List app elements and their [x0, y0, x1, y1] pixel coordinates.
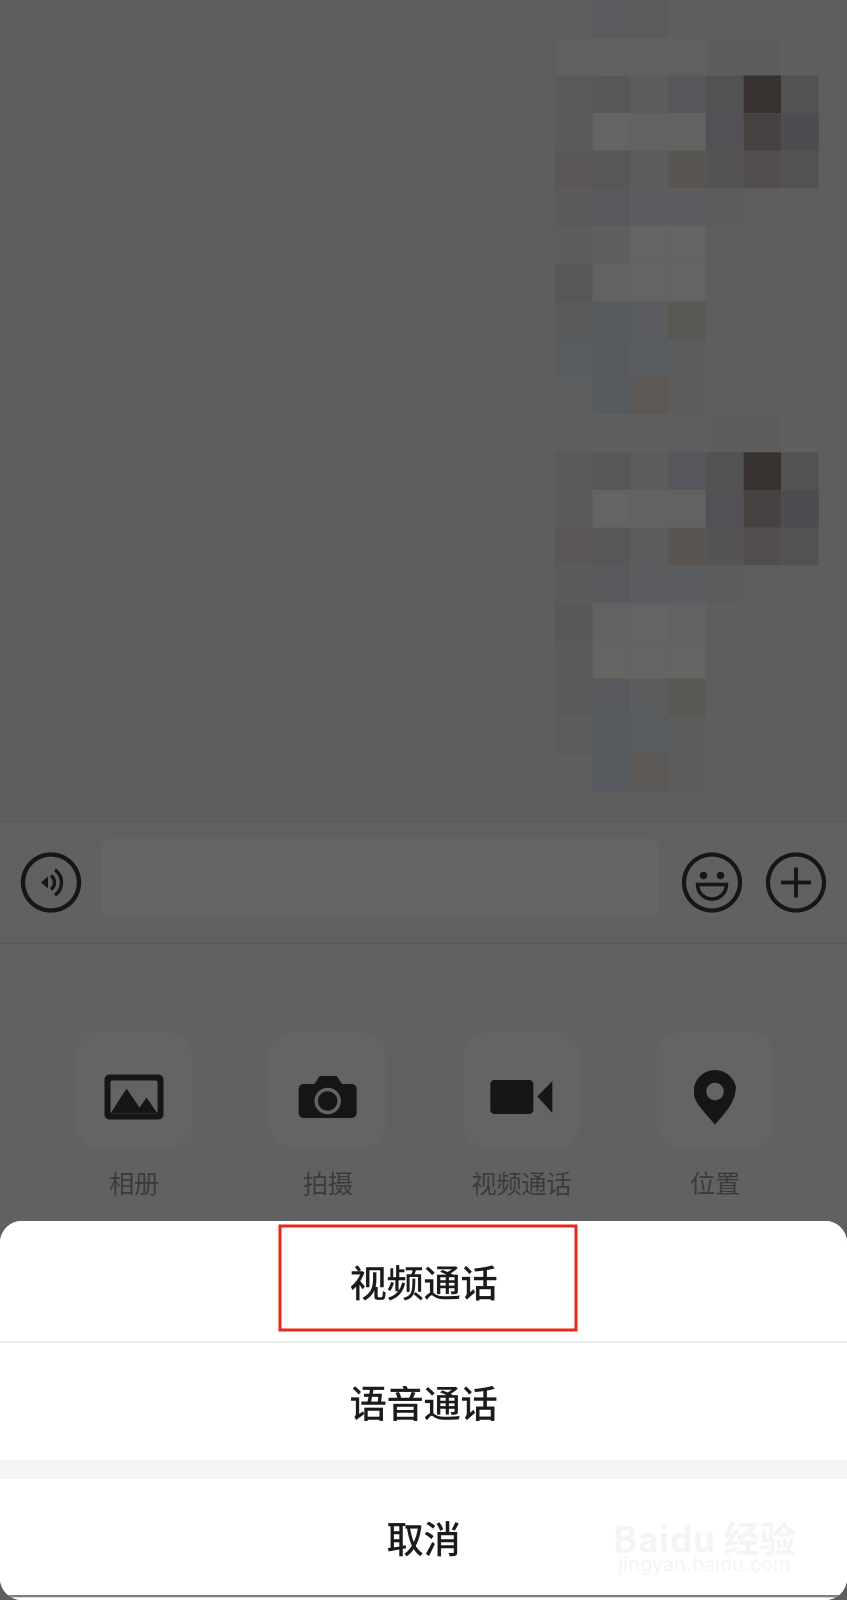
staticText: Baidu 经验 — [612, 1511, 795, 1563]
staticText: 位置 — [690, 1164, 740, 1200]
staticText: 语音通话 — [349, 1374, 497, 1429]
button[interactable]: 位置 — [657, 1032, 773, 1204]
staticText: 相册 — [109, 1164, 159, 1200]
button[interactable]: Voice message — [11, 824, 91, 941]
button[interactable]: 相册 — [76, 1032, 192, 1204]
staticText: 取消 — [386, 1510, 460, 1564]
button[interactable]: Emoji — [679, 824, 745, 941]
button[interactable]: 取消 — [0, 1479, 847, 1595]
button[interactable]: 拍摄 — [270, 1032, 386, 1204]
staticText: jingyan.baidu.com — [618, 1552, 790, 1576]
button[interactable]: 语音通话 — [0, 1343, 847, 1460]
button[interactable]: 视频通话 — [463, 1032, 579, 1204]
button[interactable]: More — [763, 824, 829, 941]
staticText: 视频通话 — [349, 1254, 497, 1308]
button[interactable]: 视频通话 — [0, 1221, 847, 1341]
staticText: 视频通话 — [471, 1164, 571, 1200]
staticText: 拍摄 — [303, 1164, 353, 1200]
